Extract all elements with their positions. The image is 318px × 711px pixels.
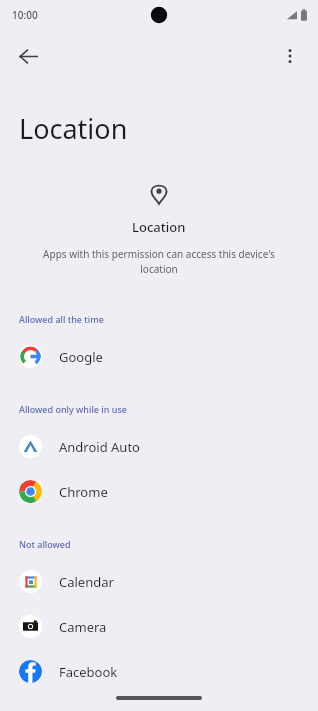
button[interactable]: Google — [0, 334, 318, 379]
staticText: Calendar — [59, 573, 114, 591]
button[interactable]: Chrome — [0, 469, 318, 514]
button[interactable]: Camera — [0, 604, 318, 649]
button[interactable]: Calendar — [0, 559, 318, 604]
button[interactable]: Back — [6, 34, 50, 78]
staticText: Location — [132, 218, 186, 236]
staticText: Google — [59, 348, 103, 366]
button[interactable]: Facebook — [0, 649, 318, 694]
staticText: Allowed only while in use — [19, 403, 127, 415]
staticText: Facebook — [59, 663, 118, 681]
staticText: Not allowed — [19, 538, 71, 550]
staticText: Apps with this permission can access thi… — [42, 247, 276, 276]
button[interactable]: More options — [268, 34, 312, 78]
staticText: 10:00 — [12, 8, 38, 22]
button[interactable]: Android Auto — [0, 424, 318, 469]
staticText: Android Auto — [59, 438, 140, 456]
staticText: Chrome — [59, 483, 108, 501]
staticText: Camera — [59, 618, 107, 636]
staticText: Location — [19, 110, 128, 147]
staticText: Allowed all the time — [19, 313, 104, 325]
